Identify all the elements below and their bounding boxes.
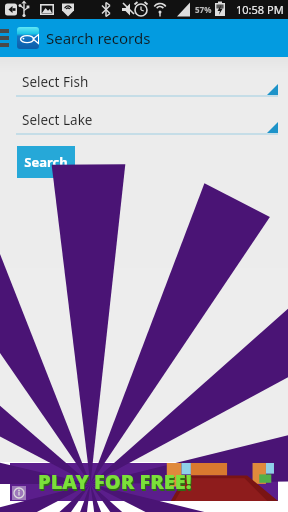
button[interactable]: Search (17, 146, 75, 178)
staticText: Select Lake (22, 111, 93, 129)
button[interactable]: Open navigation drawer (0, 19, 12, 57)
staticText: 10:58 PM (236, 2, 284, 17)
staticText: Search (24, 153, 68, 171)
staticText: PLAY FOR FREE! (38, 468, 192, 495)
button[interactable]: Select Fish (16, 69, 278, 98)
button[interactable]: Select Lake (16, 107, 278, 136)
button[interactable]: Advertisement: Play for free (10, 463, 278, 501)
staticText: Search records (46, 28, 151, 48)
staticText: PLAY FOR FREE! (39, 470, 193, 497)
staticText: 57% (195, 4, 212, 15)
staticText: Select Fish (22, 73, 89, 91)
